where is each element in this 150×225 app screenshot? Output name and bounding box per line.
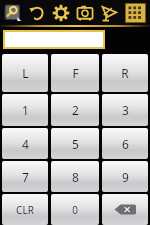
button[interactable]: R xyxy=(102,54,148,92)
staticText: L xyxy=(22,65,29,81)
button[interactable]: 8 xyxy=(51,161,99,192)
button[interactable]: 1 xyxy=(2,94,48,126)
staticText: 8 xyxy=(72,169,79,185)
staticText: CLR xyxy=(16,203,34,217)
button[interactable]: 4 xyxy=(2,128,48,159)
staticText: 9 xyxy=(122,169,129,185)
button[interactable]: 6 xyxy=(102,128,148,159)
button[interactable]: 5 xyxy=(51,128,99,159)
button[interactable]: Satellite xyxy=(97,0,121,25)
button[interactable]: 0 xyxy=(51,194,99,225)
button[interactable]: 3 xyxy=(102,94,148,126)
staticText: 3 xyxy=(122,102,129,118)
staticText: R xyxy=(121,65,129,81)
button[interactable]: CLR xyxy=(2,194,48,225)
button[interactable]: 9 xyxy=(102,161,148,192)
staticText: 4 xyxy=(22,136,29,152)
staticText: 5 xyxy=(72,136,79,152)
button[interactable]: 2 xyxy=(51,94,99,126)
button[interactable]: L xyxy=(2,54,48,92)
button[interactable]: Settings xyxy=(49,0,73,25)
staticText: 6 xyxy=(122,136,129,152)
staticText: 0 xyxy=(72,203,78,217)
staticText: 1 xyxy=(22,102,29,118)
button[interactable]: Search map xyxy=(0,0,25,25)
staticText: F xyxy=(72,65,79,81)
staticText: 7 xyxy=(22,169,29,185)
button[interactable]: Camera xyxy=(73,0,97,25)
button[interactable]: 7 xyxy=(2,161,48,192)
staticText: 2 xyxy=(72,102,79,118)
button[interactable]: Keypad xyxy=(121,0,149,25)
button[interactable]: F xyxy=(51,54,99,92)
button[interactable]: Undo xyxy=(25,0,49,25)
button[interactable]: Backspace xyxy=(102,194,148,225)
